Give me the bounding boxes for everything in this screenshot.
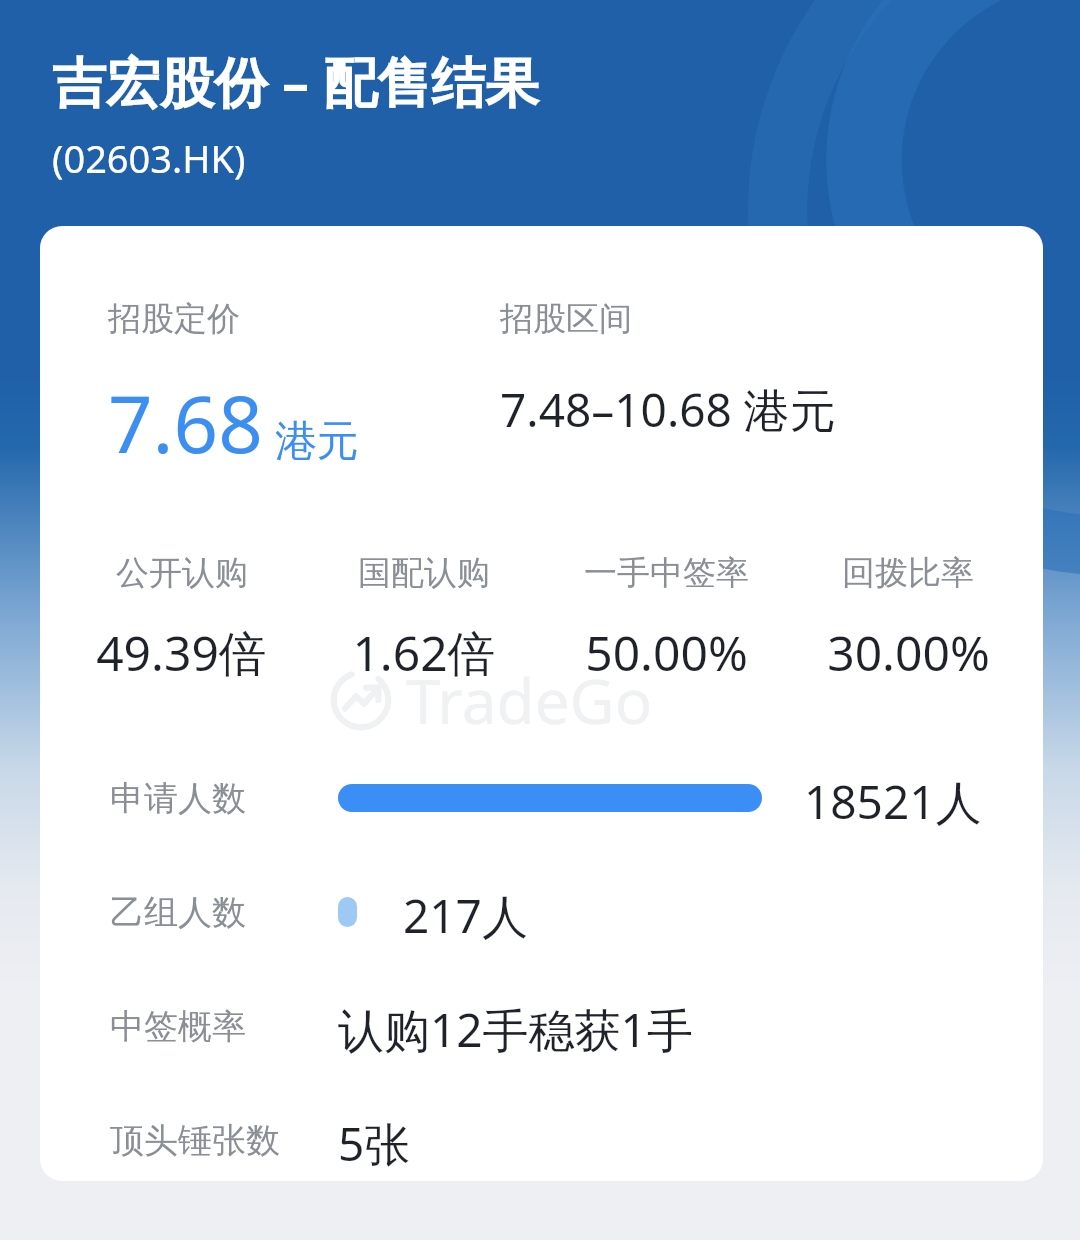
button[interactable]: 乙组人数 [40, 884, 1043, 940]
staticText: 30.00% [827, 620, 990, 685]
staticText: 顶头锤张数 [110, 1119, 280, 1162]
staticText: 港元 [275, 415, 359, 468]
staticText: 49.39倍 [96, 620, 267, 686]
staticText: 1.62倍 [352, 620, 496, 686]
button[interactable]: 申请人数 [40, 770, 1043, 826]
button[interactable]: 公开认购 [60, 552, 303, 686]
staticText: 217人 [403, 884, 528, 940]
staticText: 乙组人数 [110, 891, 246, 934]
staticText: 招股区间 [500, 298, 632, 340]
button[interactable]: 招股区间 [500, 298, 836, 441]
staticText: 50.00% [585, 620, 748, 685]
staticText: 国配认购 [358, 552, 490, 594]
button[interactable]: 招股定价 [108, 298, 500, 476]
staticText: 5张 [338, 1112, 411, 1168]
staticText: 7.68 [108, 370, 263, 476]
staticText: 认购12手稳获1手 [338, 998, 693, 1054]
staticText: 7.48–10.68 港元 [500, 378, 836, 441]
staticText: 中签概率 [110, 1005, 246, 1048]
button[interactable]: 回拨比率 [787, 552, 1029, 685]
staticText: 吉宏股份 – 配售结果 [52, 44, 540, 118]
staticText: 回拨比率 [842, 552, 974, 594]
button[interactable]: 国配认购 [303, 552, 545, 686]
button[interactable]: 顶头锤张数 [40, 1112, 1043, 1168]
button[interactable]: 一手中签率 [545, 552, 787, 685]
staticText: 公开认购 [116, 552, 248, 594]
staticText: 18521人 [804, 770, 982, 826]
staticText: 申请人数 [110, 777, 246, 820]
staticText: 招股定价 [108, 298, 240, 340]
button[interactable]: 中签概率 [40, 998, 1043, 1054]
staticText: TradeGo [406, 658, 653, 742]
staticText: 一手中签率 [584, 552, 749, 594]
staticText: (02603.HK) [52, 132, 246, 184]
